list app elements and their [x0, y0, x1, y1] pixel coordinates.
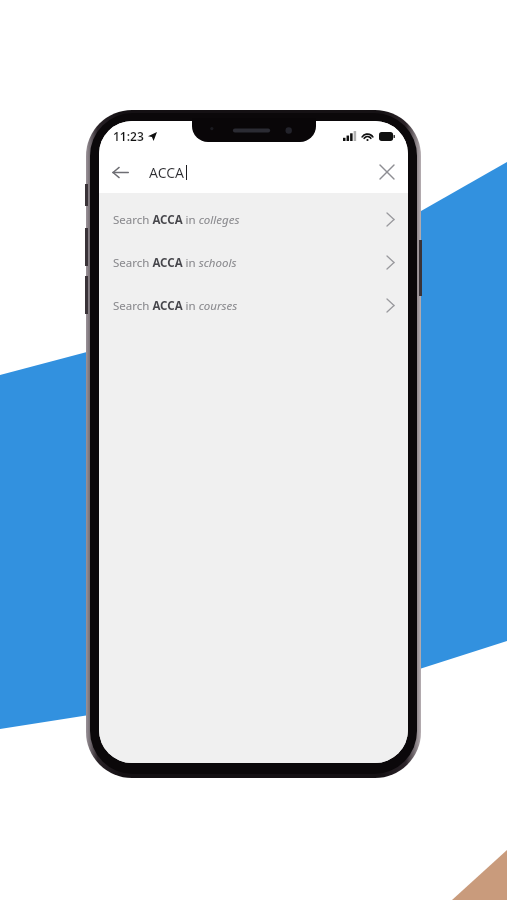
staticText: Search ACCA in schools	[113, 255, 237, 271]
button[interactable]: Back	[99, 151, 141, 193]
button[interactable]: Search ACCA in courses	[99, 284, 408, 327]
button[interactable]: Search ACCA in colleges	[99, 198, 408, 241]
button[interactable]: Search ACCA in schools	[99, 241, 408, 284]
button[interactable]: Clear search	[366, 151, 408, 193]
staticText: ACCA	[149, 163, 185, 182]
button[interactable]: ACCA	[149, 151, 366, 193]
staticText: Search ACCA in courses	[113, 298, 238, 314]
staticText: Search ACCA in colleges	[113, 212, 240, 228]
staticText: 11:23	[113, 128, 144, 144]
